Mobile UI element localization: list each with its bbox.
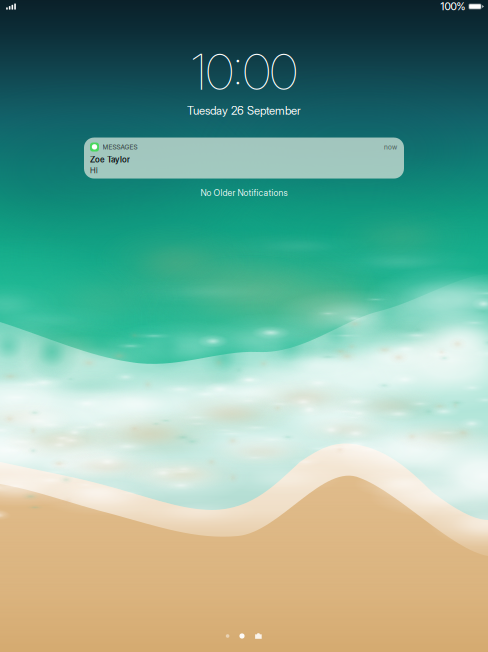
staticText: No Older Notifications xyxy=(200,188,287,198)
staticText: 100% xyxy=(440,0,465,13)
staticText: MESSAGES xyxy=(102,143,137,151)
button[interactable]: MESSAGES xyxy=(84,138,404,179)
button[interactable]: Camera xyxy=(255,632,262,639)
staticText: Hi xyxy=(90,166,98,175)
staticText: Tuesday 26 September xyxy=(187,104,301,118)
staticText: now xyxy=(384,143,397,151)
staticText: 10:00 xyxy=(191,42,297,102)
staticText: Zoe Taylor xyxy=(90,155,130,165)
